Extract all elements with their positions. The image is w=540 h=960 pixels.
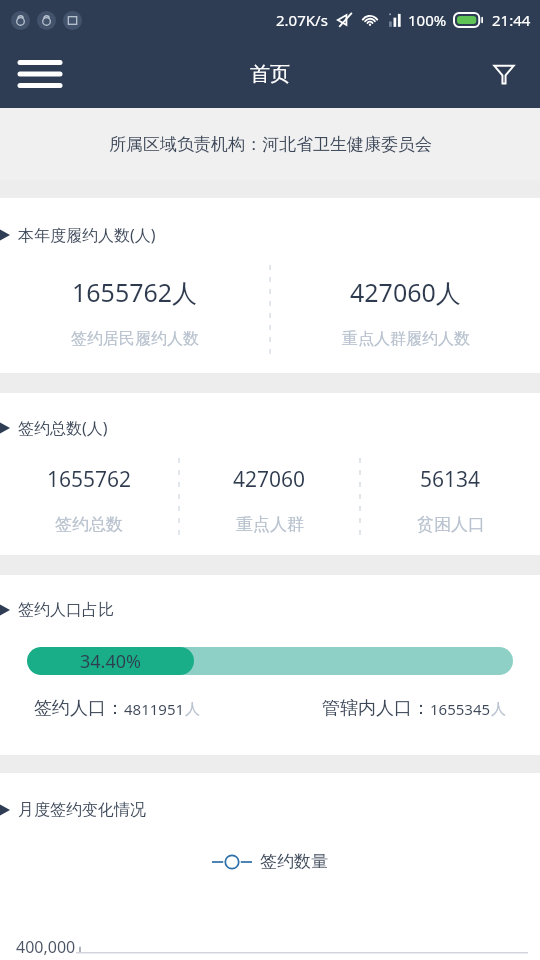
staticText: 所属区域负责机构：河北省卫生健康委员会 <box>109 134 432 155</box>
staticText: 1655762 <box>47 465 132 494</box>
staticText: 签约数量 <box>260 851 328 872</box>
staticText: 21:44 <box>492 10 531 30</box>
staticText: 2.07K/s <box>276 10 328 30</box>
staticText: 100% <box>408 10 447 30</box>
staticText: 管辖内人口： <box>322 697 430 720</box>
staticText: 1655762人 <box>72 275 198 309</box>
staticText: 本年度履约人数(人) <box>18 224 156 246</box>
staticText: 427060人 <box>350 275 461 309</box>
staticText: 1655345 <box>430 699 491 719</box>
staticText: 签约人口： <box>34 697 124 720</box>
staticText: 签约总数 <box>55 514 123 535</box>
staticText: 签约居民履约人数 <box>71 329 199 349</box>
staticText: 56134 <box>420 465 481 494</box>
staticText: 400,000 <box>16 936 76 958</box>
staticText: 4811951 <box>124 699 185 719</box>
staticText: 34.40% <box>80 649 141 674</box>
staticText: 重点人群 <box>236 514 304 535</box>
staticText: 贫困人口 <box>417 514 485 535</box>
button[interactable]: Menu <box>16 50 64 98</box>
staticText: 签约人口占比 <box>18 600 114 620</box>
staticText: 人 <box>491 700 506 719</box>
staticText: 427060 <box>233 465 306 494</box>
staticText: 人 <box>185 700 200 719</box>
staticText: 首页 <box>250 62 290 87</box>
button[interactable]: Filter <box>482 52 526 96</box>
staticText: 重点人群履约人数 <box>342 329 470 349</box>
staticText: 签约总数(人) <box>18 417 108 439</box>
staticText: 月度签约变化情况 <box>18 800 146 820</box>
